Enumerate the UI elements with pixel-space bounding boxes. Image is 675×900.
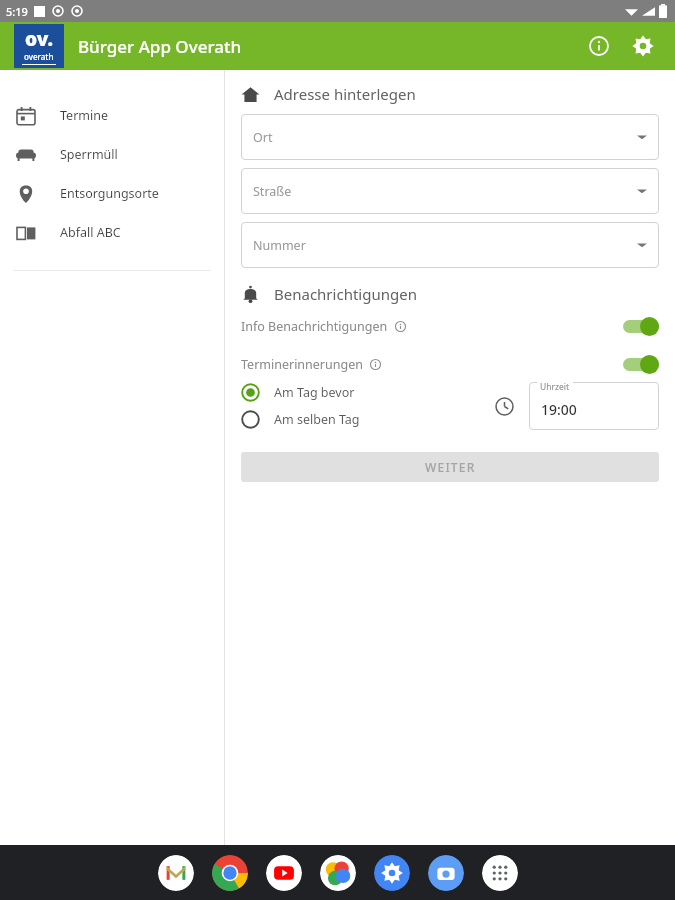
staticText: WEITER bbox=[425, 459, 476, 475]
button[interactable]: Chrome bbox=[212, 855, 248, 891]
staticText: 19:00 bbox=[541, 400, 577, 419]
button[interactable]: Settings bbox=[623, 26, 663, 66]
staticText: Abfall ABC bbox=[60, 224, 121, 241]
button[interactable]: Camera bbox=[428, 855, 464, 891]
button[interactable]: Info Benachrichtigungen bbox=[241, 316, 659, 336]
staticText: Am Tag bevor bbox=[274, 384, 355, 401]
staticText: Straße bbox=[253, 183, 292, 200]
button[interactable]: Info bbox=[579, 26, 619, 66]
button[interactable]: Pick time bbox=[489, 391, 519, 421]
staticText: overath bbox=[24, 51, 54, 62]
staticText: 5:19 bbox=[6, 4, 28, 19]
button[interactable]: Nummer bbox=[241, 222, 659, 268]
button[interactable]: Am Tag bevor bbox=[241, 383, 355, 402]
button[interactable]: WEITER bbox=[241, 452, 659, 482]
staticText: ov. bbox=[25, 26, 54, 52]
button[interactable]: Ort bbox=[241, 114, 659, 160]
button[interactable]: Terminerinnerungen bbox=[241, 354, 659, 374]
button[interactable] bbox=[529, 382, 659, 430]
button[interactable]: Termine bbox=[0, 96, 224, 135]
button[interactable]: Gmail bbox=[158, 855, 194, 891]
staticText: Sperrmüll bbox=[60, 146, 118, 163]
staticText: Terminerinnerungen bbox=[241, 356, 363, 373]
staticText: Ort bbox=[253, 129, 273, 146]
button[interactable]: All apps bbox=[482, 855, 518, 891]
staticText: Uhrzeit bbox=[540, 381, 570, 393]
staticText: Adresse hinterlegen bbox=[274, 84, 416, 104]
button[interactable]: Settings bbox=[374, 855, 410, 891]
staticText: Nummer bbox=[253, 237, 306, 254]
button[interactable]: Photos bbox=[320, 855, 356, 891]
staticText: Entsorgungsorte bbox=[60, 185, 159, 202]
staticText: Benachrichtigungen bbox=[274, 284, 417, 304]
button[interactable]: Am selben Tag bbox=[241, 410, 360, 429]
button[interactable]: Entsorgungsorte bbox=[0, 174, 224, 213]
button[interactable]: Straße bbox=[241, 168, 659, 214]
staticText: Termine bbox=[60, 107, 108, 124]
button[interactable]: YouTube bbox=[266, 855, 302, 891]
button[interactable]: Abfall ABC bbox=[0, 213, 224, 252]
button[interactable]: Sperrmüll bbox=[0, 135, 224, 174]
button[interactable]: Overath logo bbox=[14, 24, 64, 68]
staticText: Bürger App Overath bbox=[78, 35, 242, 58]
staticText: Am selben Tag bbox=[274, 411, 360, 428]
staticText: Info Benachrichtigungen bbox=[241, 318, 388, 335]
